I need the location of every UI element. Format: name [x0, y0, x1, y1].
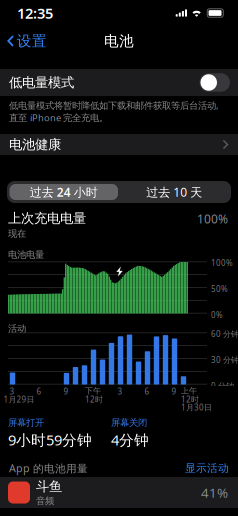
staticText: 12时: [85, 394, 103, 405]
staticText: 上次充电电量: [8, 210, 86, 226]
button[interactable]: 低电量模式: [199, 73, 230, 92]
button[interactable]: 过去 10 天: [120, 184, 228, 200]
staticText: 低电量模式将暂时降低如下载和邮件获取等后台活动, 直至 iPhone 完全充电。: [9, 99, 219, 124]
staticText: 低电量模式: [9, 74, 74, 91]
staticText: 12:35: [17, 3, 53, 23]
staticText: 4分钟: [111, 430, 149, 449]
staticText: 斗鱼: [36, 478, 62, 495]
staticText: 12时: [181, 394, 199, 405]
button[interactable]: 斗鱼: [0, 477, 238, 508]
staticText: 3: [9, 386, 14, 397]
staticText: 60 分钟: [211, 328, 238, 339]
staticText: 设置: [17, 32, 47, 50]
staticText: 活动: [8, 323, 26, 334]
staticText: App 的电池用量: [9, 461, 88, 475]
staticText: 过去 24 小时: [30, 184, 98, 200]
staticText: 1月29日: [3, 394, 34, 405]
staticText: 过去 10 天: [146, 184, 202, 200]
button[interactable]: 过去 24 小时: [9, 184, 118, 200]
button[interactable]: 设置: [0, 30, 55, 52]
staticText: 电池电量: [8, 249, 44, 260]
staticText: 音频: [36, 495, 54, 507]
staticText: 电池健康: [9, 136, 61, 153]
button[interactable]: 电池健康: [0, 134, 238, 155]
staticText: 0 分钟: [211, 380, 234, 391]
staticText: 电池: [104, 32, 134, 50]
staticText: 30 分钟: [211, 354, 238, 365]
button[interactable]: 显示活动: [185, 462, 229, 475]
staticText: 上午: [181, 386, 197, 396]
staticText: 100%: [197, 211, 228, 227]
staticText: 50%: [211, 283, 228, 294]
staticText: 屏幕打开: [8, 417, 44, 428]
staticText: 9: [171, 386, 176, 397]
staticText: 0%: [211, 309, 223, 320]
staticText: 屏幕关闭: [111, 417, 147, 428]
staticText: 41%: [201, 484, 228, 501]
staticText: 9小时59分钟: [8, 430, 92, 449]
staticText: 3: [117, 386, 122, 397]
staticText: 6: [36, 386, 41, 397]
staticText: 6: [144, 386, 149, 397]
staticText: 下午: [85, 386, 101, 396]
staticText: 9: [63, 386, 68, 397]
staticText: 显示活动: [185, 462, 229, 475]
staticText: 现在: [8, 228, 26, 239]
staticText: 1月30日: [181, 402, 212, 413]
staticText: 100%: [211, 257, 233, 268]
